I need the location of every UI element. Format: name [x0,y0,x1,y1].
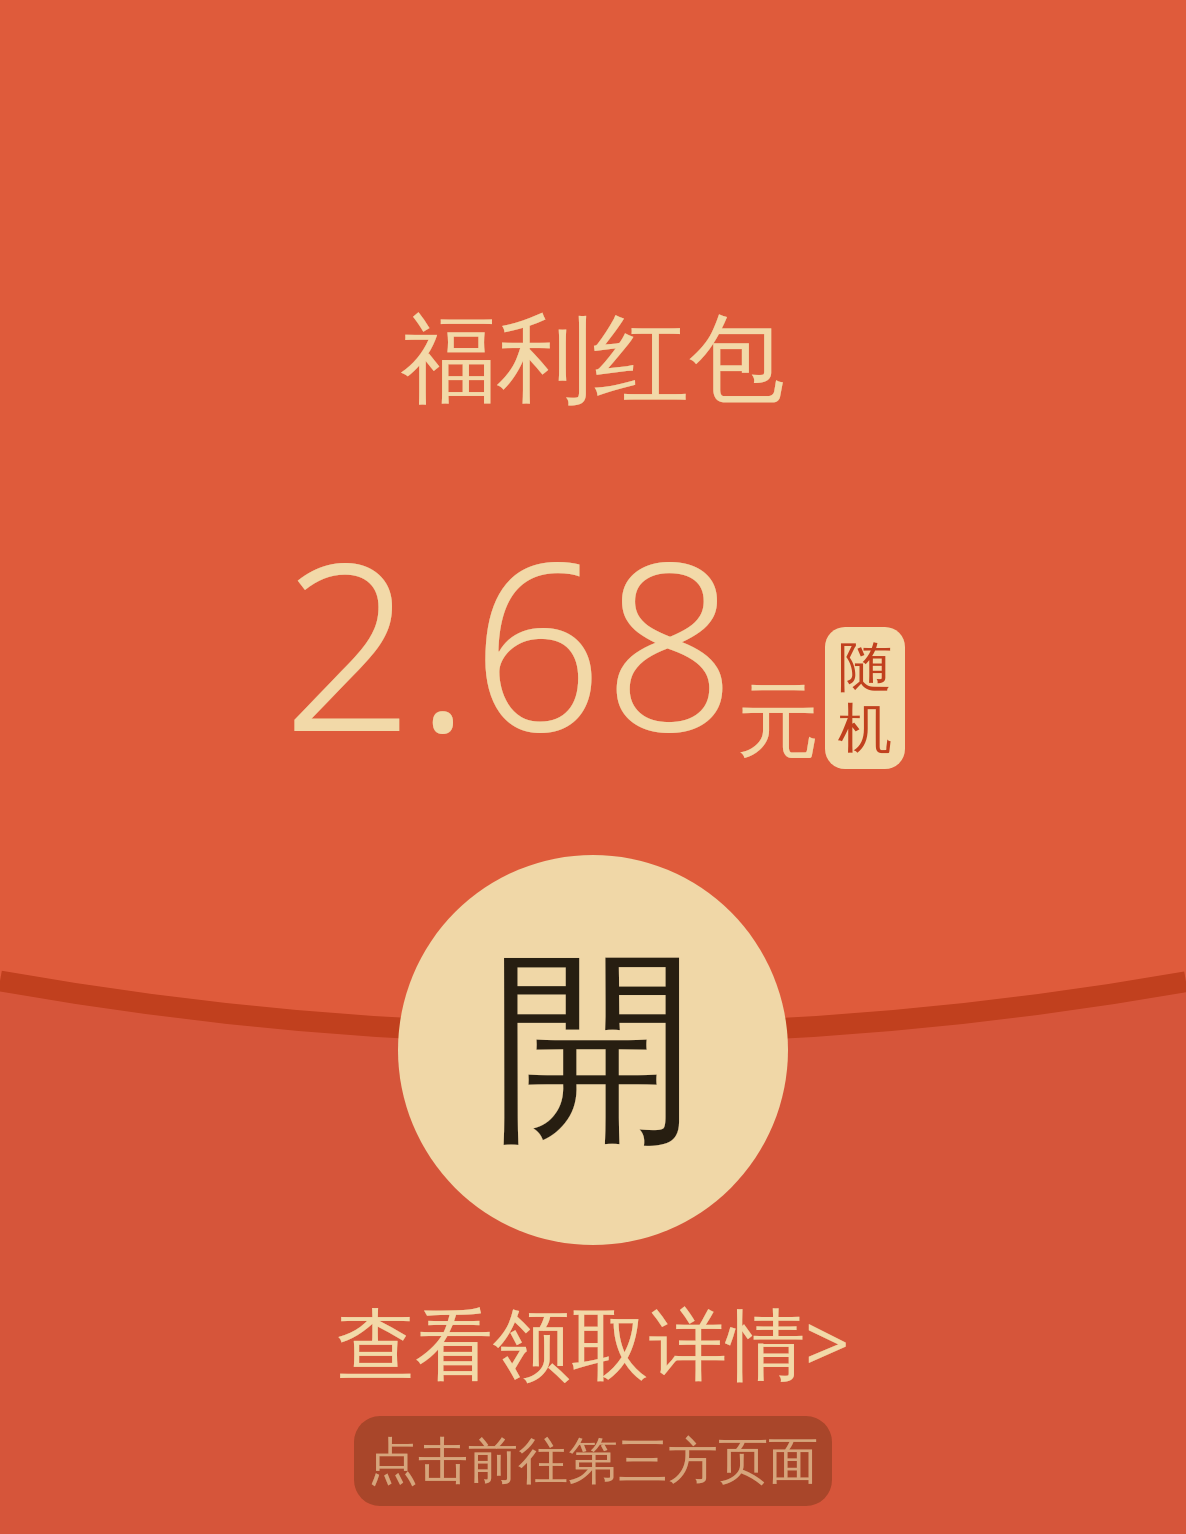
staticText: 查看领取详情> [337,1289,850,1396]
button[interactable]: 查看领取详情> [329,1285,858,1400]
staticText: 開 [491,921,696,1179]
button[interactable]: 开红包 [398,855,788,1245]
staticText: 随 机 [838,633,892,763]
staticText: 元 [737,670,819,773]
staticText: 福利红包 [401,300,785,421]
staticText: 2.68 [282,483,737,799]
staticText: 点击前往第三方页面 [368,1430,818,1493]
button[interactable]: 点击前往第三方页面 [354,1416,832,1506]
